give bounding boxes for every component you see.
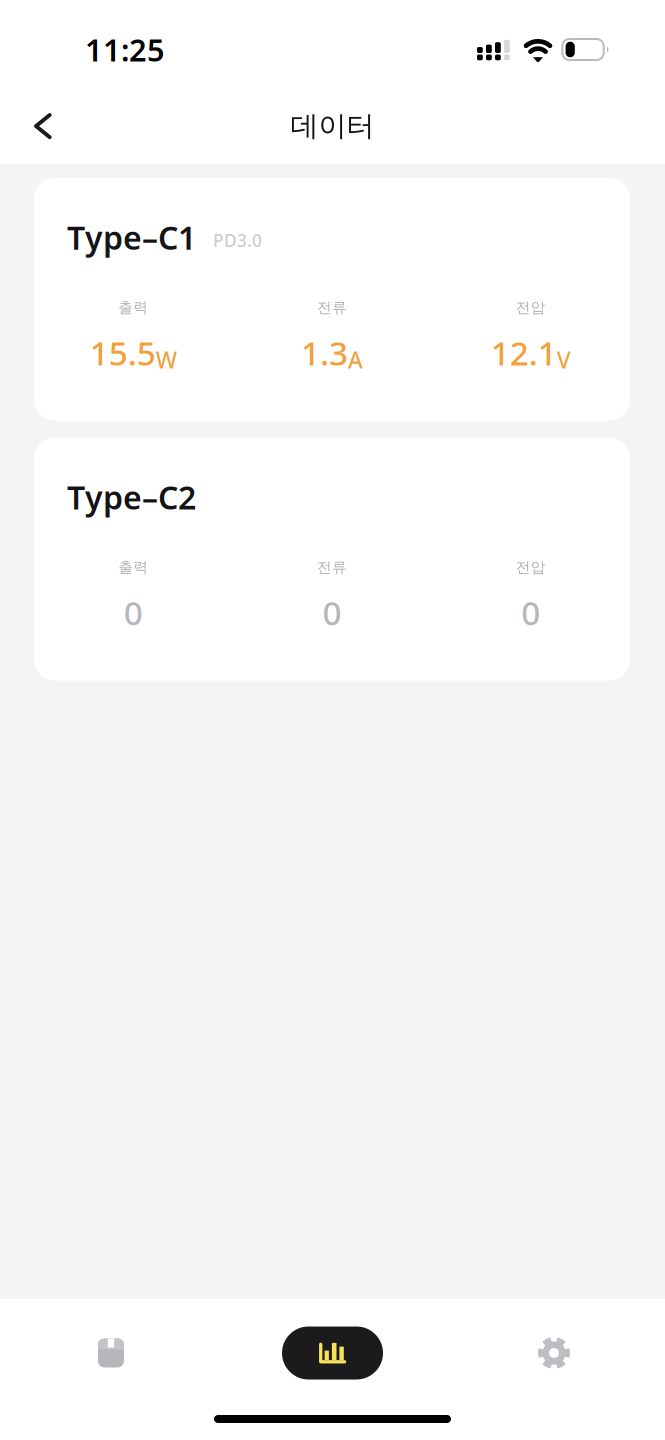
- staticText: 0: [322, 590, 341, 635]
- button[interactable]: Back: [14, 95, 72, 157]
- staticText: A: [348, 345, 363, 375]
- staticText: W: [156, 345, 177, 375]
- staticText: PD3.0: [213, 229, 262, 252]
- staticText: 전압: [516, 298, 546, 316]
- staticText: 12.1: [491, 330, 557, 375]
- button[interactable]: Settings: [443, 1325, 665, 1381]
- staticText: 15.5: [90, 330, 156, 375]
- button[interactable]: Device: [0, 1325, 222, 1381]
- staticText: 1.3: [301, 330, 348, 375]
- button[interactable]: Data: [222, 1325, 443, 1381]
- staticText: 0: [124, 590, 143, 635]
- staticText: 출력: [118, 558, 148, 576]
- staticText: Type–C2: [67, 476, 196, 518]
- staticText: 출력: [118, 298, 148, 316]
- staticText: Type–C1: [67, 216, 196, 258]
- staticText: 전류: [317, 558, 347, 576]
- staticText: 데이터: [290, 109, 374, 143]
- staticText: 11:25: [85, 29, 165, 70]
- staticText: V: [557, 345, 571, 375]
- staticText: 전류: [317, 298, 347, 316]
- staticText: 0: [521, 590, 540, 635]
- staticText: 전압: [516, 558, 546, 576]
